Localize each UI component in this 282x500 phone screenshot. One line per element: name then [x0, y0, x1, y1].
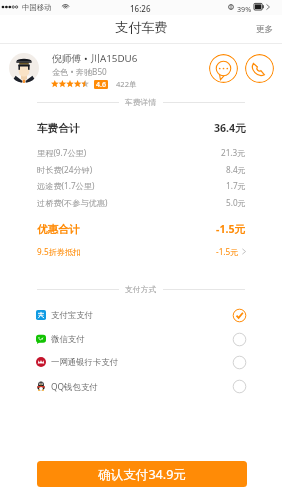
staticText: 8.4元 [226, 164, 246, 175]
staticText: 9.5折券抵扣 [37, 246, 82, 257]
staticText: 39% [237, 4, 252, 14]
button[interactable]: Message driver [209, 54, 238, 83]
staticText: 21.3元 [221, 147, 246, 158]
staticText: -1.5元 [216, 222, 246, 236]
staticText: 优惠合计 [37, 223, 80, 236]
staticText: 微信支付 [51, 334, 85, 345]
button[interactable]: QQ钱包支付 [36, 375, 246, 397]
staticText: 支付车费 [115, 19, 168, 36]
staticText: 倪师傅 • 川A15DU6 [52, 52, 138, 65]
button[interactable]: 支付宝支付 [36, 304, 246, 326]
button[interactable]: 微信支付 [36, 328, 246, 350]
staticText: QQ钱包支付 [51, 381, 98, 392]
button[interactable]: 9.5折券抵扣 [37, 246, 246, 257]
staticText: 车费详情 [125, 97, 157, 107]
staticText: 时长费(24分钟) [37, 164, 93, 175]
staticText: 过桥费(不参与优惠) [37, 197, 108, 208]
staticText: 里程(9.7公里) [37, 147, 87, 158]
button[interactable]: Call driver [245, 54, 274, 83]
staticText: 36.4元 [214, 121, 246, 135]
staticText: 422单 [116, 79, 137, 89]
staticText: 1.7元 [226, 180, 246, 191]
staticText: 中国移动 [22, 3, 52, 12]
staticText: 5.0元 [226, 197, 246, 208]
staticText: 确认支付34.9元 [98, 466, 186, 483]
staticText: 车费合计 [37, 122, 80, 135]
staticText: 更多 [256, 24, 274, 35]
staticText: 金色 • 奔驰B50 [52, 66, 107, 77]
staticText: 支付宝支付 [51, 310, 93, 321]
button[interactable]: 确认支付34.9元 [37, 461, 247, 487]
button[interactable]: 更多 [256, 24, 274, 35]
button[interactable]: 一网通银行卡支付 [36, 351, 246, 373]
staticText: 16:26 [130, 3, 151, 14]
staticText: 支付方式 [125, 284, 157, 294]
staticText: 4.6 [96, 80, 106, 89]
staticText: -1.5元 [216, 246, 239, 257]
staticText: 一网通银行卡支付 [51, 357, 119, 368]
staticText: 远途费(1.7公里) [37, 180, 95, 191]
